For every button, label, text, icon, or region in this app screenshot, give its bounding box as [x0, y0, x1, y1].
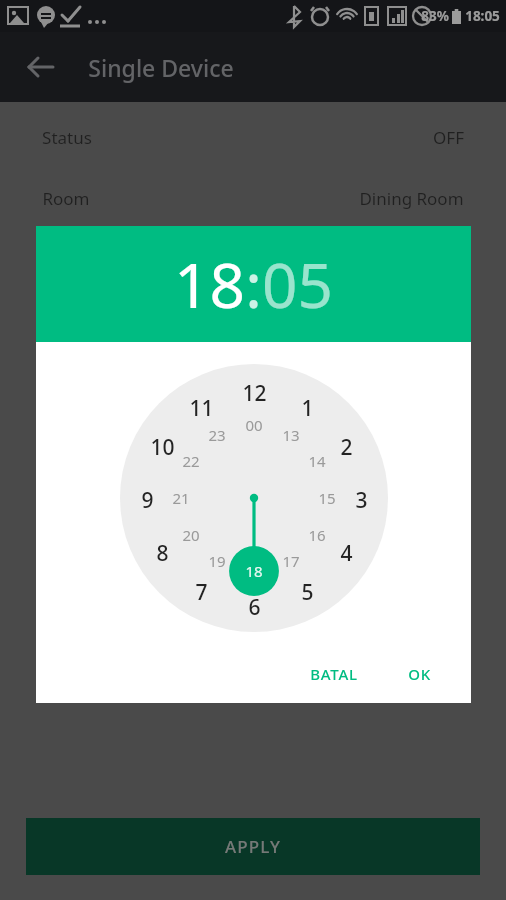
- button[interactable]: Room: [42, 187, 464, 210]
- staticText: 16: [308, 525, 326, 545]
- staticText: 22: [182, 451, 200, 471]
- staticText: 1: [301, 394, 314, 418]
- staticText: 23: [208, 425, 226, 445]
- staticText: 10: [150, 433, 175, 457]
- staticText: 8: [156, 539, 169, 563]
- button[interactable]: 18: [174, 242, 245, 326]
- staticText: Room: [42, 187, 90, 210]
- staticText: 19: [208, 551, 226, 571]
- staticText: 83%: [421, 7, 449, 25]
- staticText: 2: [340, 433, 353, 457]
- staticText: 20: [182, 525, 200, 545]
- staticText: 14: [308, 451, 326, 471]
- staticText: :: [245, 242, 262, 326]
- staticText: 6: [248, 593, 261, 617]
- staticText: Dining Room: [359, 187, 464, 210]
- staticText: 5: [301, 578, 314, 602]
- staticText: 3: [355, 486, 368, 510]
- staticText: OK: [408, 664, 431, 684]
- button[interactable]: 1: [120, 364, 388, 632]
- staticText: APPLY: [225, 835, 281, 858]
- staticText: 9: [141, 486, 154, 510]
- staticText: 15: [318, 488, 336, 508]
- staticText: BATAL: [310, 664, 358, 684]
- button[interactable]: BATAL: [300, 656, 368, 692]
- staticText: 18: [174, 242, 245, 326]
- staticText: 18: [245, 561, 263, 581]
- button[interactable]: OK: [398, 656, 441, 692]
- button[interactable]: Back: [16, 43, 64, 91]
- staticText: 00: [245, 415, 263, 435]
- button[interactable]: APPLY: [26, 818, 480, 875]
- staticText: 4: [340, 539, 353, 563]
- staticText: 7: [195, 578, 208, 602]
- staticText: 05: [262, 242, 333, 326]
- staticText: OFF: [433, 126, 464, 149]
- staticText: Status: [42, 126, 92, 149]
- staticText: 18:05: [465, 7, 500, 25]
- button[interactable]: 05: [262, 242, 333, 326]
- staticText: 21: [172, 488, 190, 508]
- button[interactable]: Status: [42, 126, 464, 149]
- staticText: 13: [282, 425, 300, 445]
- staticText: 12: [242, 379, 267, 403]
- staticText: 11: [189, 394, 214, 418]
- staticText: Single Device: [88, 52, 234, 83]
- staticText: 17: [282, 551, 300, 571]
